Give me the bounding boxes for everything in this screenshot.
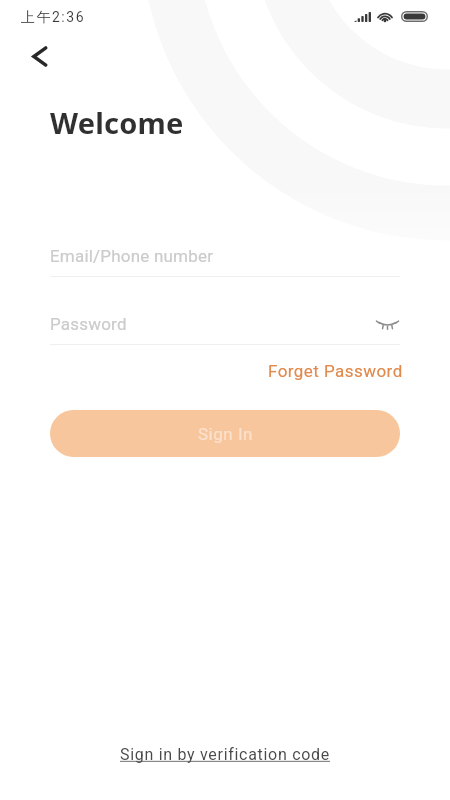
staticText: 上午2:36 (21, 9, 85, 27)
staticText: Password (50, 314, 127, 334)
button[interactable]: Sign in by verification code (120, 745, 330, 764)
staticText: Sign In (198, 424, 253, 444)
button[interactable]: Show password (374, 311, 400, 337)
staticText: Welcome (50, 103, 184, 142)
button[interactable]: Forget Password (265, 361, 400, 381)
button[interactable]: Back (17, 34, 61, 78)
staticText: Email/Phone number (50, 246, 214, 266)
button[interactable]: Sign In (50, 410, 400, 457)
